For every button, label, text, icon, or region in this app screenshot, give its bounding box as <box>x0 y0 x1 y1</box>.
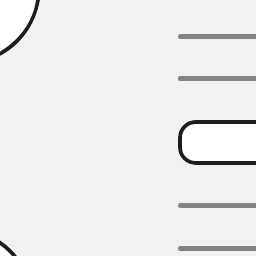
button[interactable]: List item 4 <box>40 184 256 226</box>
button[interactable]: List item 5 <box>40 227 256 256</box>
button[interactable]: Open item thumbnail <box>0 227 34 256</box>
button[interactable]: List item 2 <box>40 57 256 99</box>
button[interactable]: Open item thumbnail <box>0 0 41 65</box>
button[interactable]: List item 1 <box>40 15 256 57</box>
button[interactable]: Selected item <box>178 120 256 165</box>
